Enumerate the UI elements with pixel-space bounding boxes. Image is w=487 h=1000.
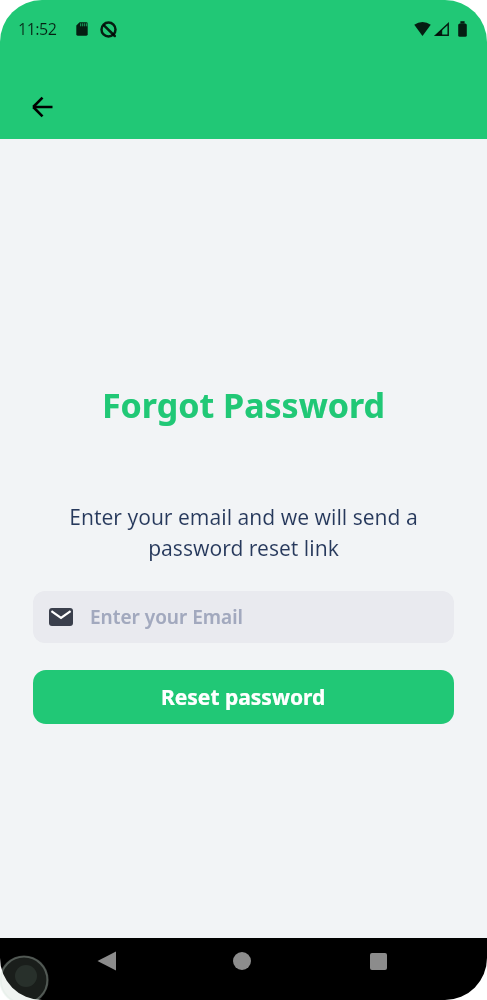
staticText: Forgot Password — [0, 382, 487, 428]
button[interactable] — [85, 939, 129, 983]
staticText: Enter your Email — [90, 604, 243, 630]
button[interactable] — [21, 85, 65, 129]
staticText: 11:52 — [18, 18, 57, 40]
button[interactable]: Reset password — [33, 670, 454, 724]
staticText: Enter your email and we will send a pass… — [0, 503, 487, 562]
button[interactable] — [356, 939, 400, 983]
staticText: Reset password — [161, 683, 326, 712]
button[interactable]: Enter your Email — [33, 591, 454, 643]
button[interactable] — [220, 939, 264, 983]
